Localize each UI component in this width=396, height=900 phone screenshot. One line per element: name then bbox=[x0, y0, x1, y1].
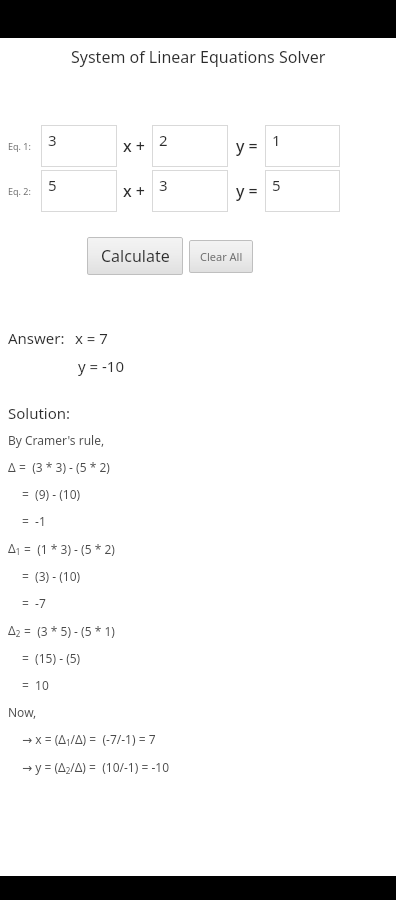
staticText: → y = (Δ2/Δ) = (10/-1) = -10 bbox=[22, 759, 170, 776]
button[interactable]: Calculate bbox=[87, 237, 183, 275]
staticText: = (3 * 3) - (5 * 2) bbox=[16, 459, 110, 475]
staticText: = (9) - (10) bbox=[22, 486, 81, 502]
staticText: x + bbox=[123, 135, 146, 157]
button[interactable]: 3 bbox=[41, 125, 117, 167]
staticText: Δ2 bbox=[8, 622, 21, 639]
staticText: 3 bbox=[48, 130, 57, 150]
staticText: Now, bbox=[8, 704, 37, 720]
staticText: 5 bbox=[48, 175, 57, 195]
button[interactable]: 2 bbox=[152, 125, 228, 167]
button[interactable]: 5 bbox=[265, 170, 340, 212]
button[interactable]: 5 bbox=[41, 170, 117, 212]
staticText: Calculate bbox=[101, 245, 170, 267]
staticText: x + bbox=[123, 180, 146, 202]
staticText: x = 7 bbox=[75, 328, 108, 348]
staticText: Eq. 1: bbox=[8, 140, 31, 152]
staticText: y = bbox=[236, 180, 258, 202]
staticText: 1 bbox=[272, 130, 281, 150]
button[interactable]: 1 bbox=[265, 125, 340, 167]
staticText: Δ1 bbox=[8, 540, 21, 557]
staticText: System of Linear Equations Solver bbox=[71, 46, 326, 68]
staticText: Clear All bbox=[200, 249, 243, 264]
staticText: = -1 bbox=[22, 513, 46, 529]
staticText: Answer: bbox=[8, 328, 65, 348]
button[interactable]: Clear All bbox=[189, 240, 253, 273]
staticText: = (3) - (10) bbox=[22, 568, 81, 584]
staticText: By Cramer's rule, bbox=[8, 432, 105, 448]
staticText: Eq. 2: bbox=[8, 185, 31, 197]
staticText: 3 bbox=[159, 175, 168, 195]
button[interactable]: 3 bbox=[152, 170, 228, 212]
staticText: y = -10 bbox=[78, 356, 125, 376]
staticText: = (1 * 3) - (5 * 2) bbox=[21, 541, 115, 557]
staticText: = 10 bbox=[22, 677, 49, 693]
staticText: Solution: bbox=[8, 403, 71, 423]
staticText: Δ bbox=[8, 459, 16, 475]
staticText: = (15) - (5) bbox=[22, 650, 81, 666]
staticText: 5 bbox=[272, 175, 281, 195]
staticText: = -7 bbox=[22, 595, 46, 611]
staticText: = (3 * 5) - (5 * 1) bbox=[21, 623, 115, 639]
staticText: → x = (Δ1/Δ) = (-7/-1) = 7 bbox=[22, 731, 156, 748]
staticText: 2 bbox=[159, 130, 168, 150]
staticText: y = bbox=[236, 135, 258, 157]
